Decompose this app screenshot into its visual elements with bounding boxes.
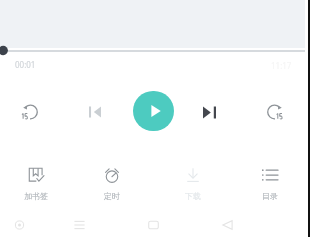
button[interactable]: 加书签: [14, 167, 58, 201]
button[interactable]: 下载: [171, 167, 215, 201]
button[interactable]: Next: [192, 95, 226, 129]
staticText: 目录: [262, 191, 278, 201]
button[interactable]: 目录: [248, 167, 292, 201]
button[interactable]: Recents: [63, 211, 95, 237]
staticText: 00:01: [15, 59, 36, 70]
staticText: 下载: [185, 191, 201, 201]
staticText: 加书签: [24, 191, 48, 201]
staticText: 定时: [104, 191, 120, 201]
button[interactable]: Home: [137, 211, 169, 237]
button[interactable]: Play: [133, 91, 174, 131]
button[interactable]: Forward 15 seconds: [258, 95, 292, 129]
button[interactable]: 定时: [90, 167, 134, 201]
button[interactable]: Assistant: [3, 211, 35, 237]
button[interactable]: Rewind 15 seconds: [13, 95, 47, 129]
button[interactable]: Previous: [78, 95, 112, 129]
button[interactable]: Back: [211, 211, 243, 237]
